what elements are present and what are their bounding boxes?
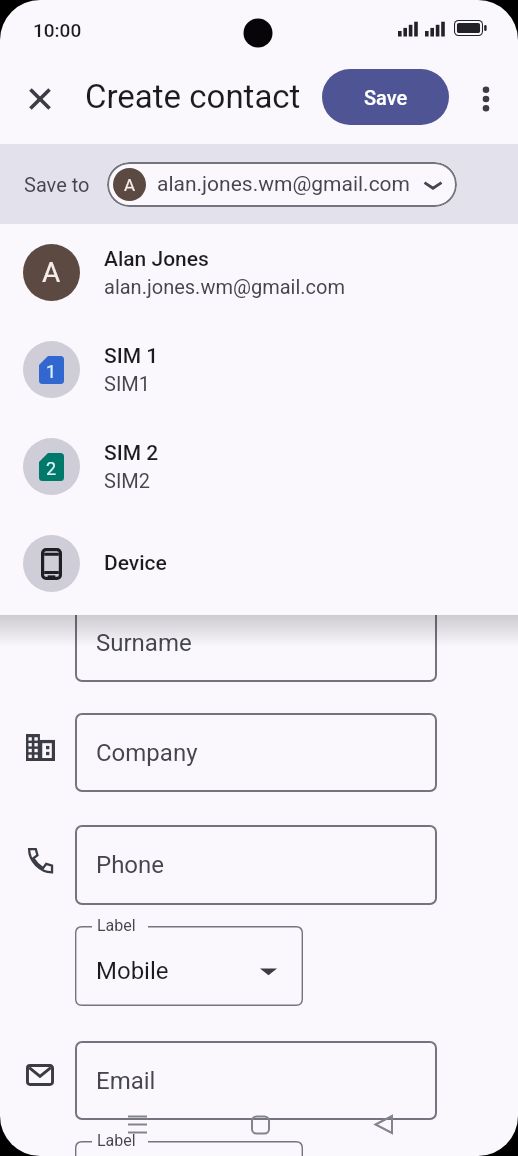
button[interactable]: Close	[14, 73, 66, 125]
button[interactable]: A	[107, 162, 457, 207]
staticText: Company	[96, 739, 198, 767]
button[interactable]: Label	[75, 926, 303, 1006]
staticText: SIM 2	[104, 441, 159, 466]
staticText: SIM1	[104, 372, 151, 395]
staticText: Save to	[24, 173, 90, 196]
button[interactable]: Phone	[75, 825, 437, 905]
staticText: Label	[97, 1131, 136, 1150]
staticText: SIM 1	[104, 344, 159, 369]
staticText: Create contact	[85, 77, 301, 116]
staticText: Device	[104, 551, 167, 576]
staticText: Mobile	[96, 957, 169, 985]
button[interactable]: Label	[75, 1141, 303, 1156]
button[interactable]: 1	[0, 321, 518, 418]
button[interactable]: More options	[460, 73, 512, 125]
staticText: Phone	[96, 851, 165, 879]
staticText: 2	[46, 458, 57, 479]
staticText: Email	[96, 1067, 156, 1095]
staticText: Save	[364, 86, 408, 109]
button[interactable]: Company	[75, 713, 437, 792]
button[interactable]: 2	[0, 418, 518, 515]
other: Field icon	[26, 1064, 54, 1086]
staticText: 10:00	[33, 19, 82, 41]
staticText: 1	[46, 361, 57, 382]
button[interactable]: Device	[0, 515, 518, 612]
button[interactable]: Save	[322, 69, 449, 125]
staticText: SIM2	[104, 469, 151, 492]
staticText: Alan Jones	[104, 247, 209, 272]
button[interactable]: A	[0, 224, 518, 321]
button[interactable]: Surname	[75, 603, 437, 682]
staticText: A	[124, 175, 136, 195]
other: Field icon	[26, 846, 54, 874]
staticText: Surname	[96, 629, 192, 657]
other: Field icon	[26, 734, 55, 761]
staticText: alan.jones.wm@gmail.com	[104, 275, 345, 298]
staticText: alan.jones.wm@gmail.com	[157, 172, 411, 197]
button[interactable]: Email	[75, 1041, 437, 1120]
staticText: Label	[97, 916, 136, 935]
staticText: A	[42, 256, 61, 289]
